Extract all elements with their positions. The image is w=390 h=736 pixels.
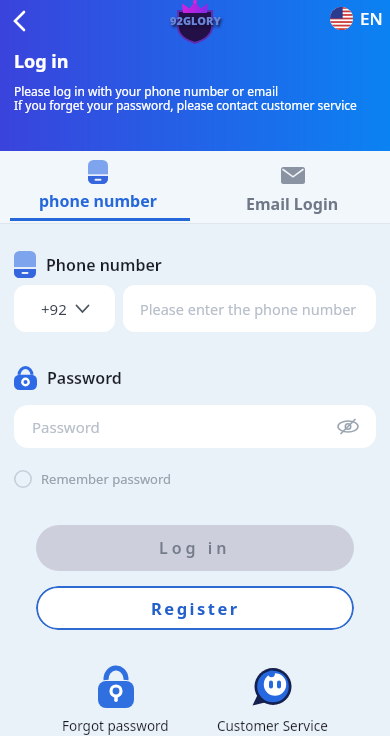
button[interactable]: phone number [0, 151, 195, 224]
button[interactable]: Forgot password [62, 667, 169, 735]
staticText: Password [32, 417, 100, 437]
staticText: Register [151, 597, 240, 619]
staticText: Password [47, 367, 122, 389]
button[interactable]: Customer Service [217, 667, 328, 735]
staticText: Log in [14, 49, 69, 74]
button[interactable]: Log in [36, 525, 354, 571]
staticText: Forgot password [62, 717, 169, 735]
staticText: Please log in with your phone number or … [14, 83, 357, 113]
staticText: phone number [39, 190, 157, 212]
staticText: Please enter the phone number [140, 299, 357, 319]
button[interactable]: Please enter the phone number [123, 285, 376, 332]
button[interactable] [6, 4, 38, 36]
button[interactable] [337, 418, 359, 435]
button[interactable]: Email Login [195, 151, 390, 224]
staticText: Log in [159, 537, 231, 559]
staticText: 92GLORY [170, 13, 221, 28]
button[interactable]: EN [330, 7, 383, 30]
button[interactable]: Remember password [14, 470, 172, 488]
staticText: Customer Service [217, 717, 328, 735]
staticText: Email Login [246, 193, 339, 215]
staticText: EN [360, 7, 383, 30]
staticText: Phone number [46, 254, 162, 276]
button[interactable]: Password [14, 405, 376, 448]
button[interactable]: Register [36, 586, 354, 630]
staticText: +92 [41, 299, 67, 319]
staticText: Remember password [41, 470, 172, 488]
button[interactable]: +92 [14, 285, 115, 332]
